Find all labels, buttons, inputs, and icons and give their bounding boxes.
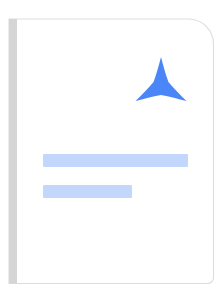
button[interactable]: Logo <box>131 56 191 102</box>
